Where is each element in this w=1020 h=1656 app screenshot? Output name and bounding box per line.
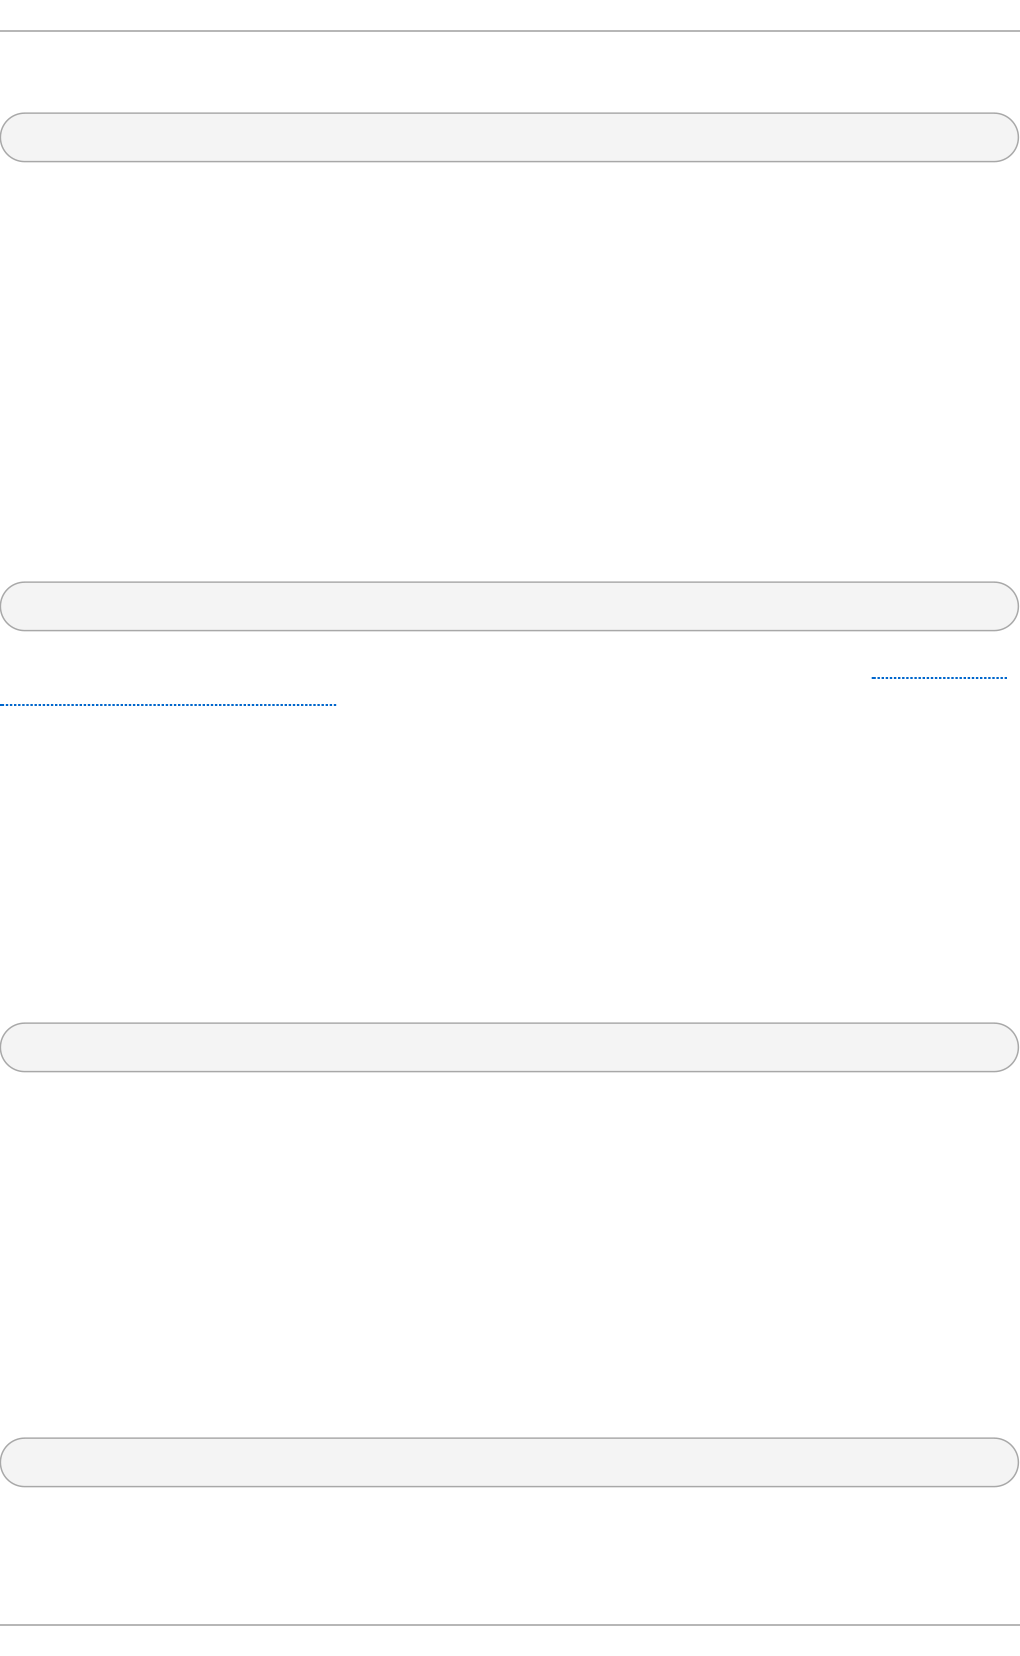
button[interactable]: Currency — [0, 1023, 1018, 1072]
button[interactable]: Language — [0, 582, 1018, 631]
button[interactable]: Payment method — [0, 1438, 1018, 1487]
button[interactable]: Country or region — [0, 113, 1018, 162]
button[interactable]: Learn more — [0, 677, 1020, 706]
